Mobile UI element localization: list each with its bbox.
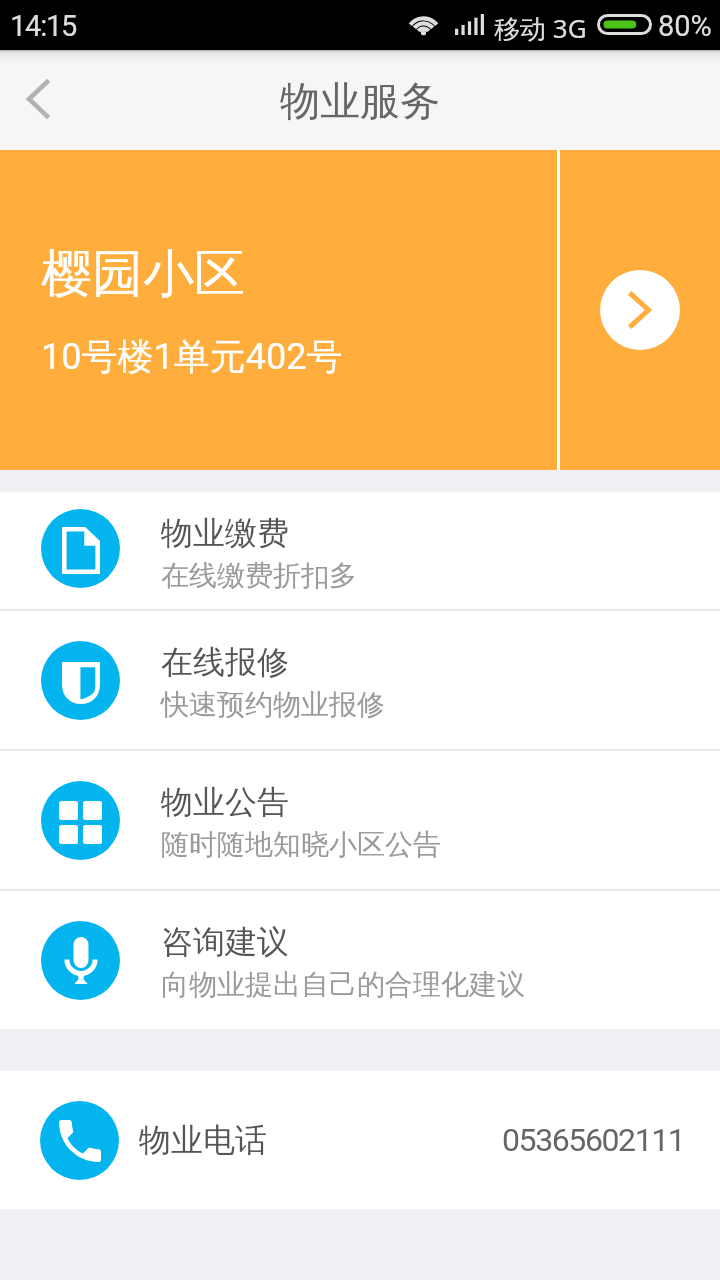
button[interactable]: 物业电话 [0, 1071, 720, 1209]
staticText: 物业服务 [280, 76, 440, 126]
staticText: 咨询建议 [161, 922, 289, 962]
staticText: 物业缴费 [161, 513, 289, 553]
staticText: 樱园小区 [41, 242, 245, 306]
button[interactable]: 樱园小区 [0, 150, 720, 470]
button[interactable]: 在线报修 [0, 611, 720, 749]
staticText: 移动 3G [494, 10, 587, 46]
button[interactable]: 咨询建议 [0, 891, 720, 1029]
staticText: 在线报修 [161, 642, 289, 682]
staticText: 物业电话 [139, 1120, 267, 1160]
staticText: 05365602111 [502, 1121, 685, 1159]
staticText: 随时随地知晓小区公告 [161, 827, 441, 862]
button[interactable]: Back [0, 50, 76, 150]
button[interactable]: 物业公告 [0, 751, 720, 889]
staticText: 快速预约物业报修 [161, 687, 385, 722]
staticText: 物业公告 [161, 782, 289, 822]
staticText: 14:15 [10, 9, 77, 43]
staticText: 80% [658, 9, 712, 43]
staticText: 10号楼1单元402号 [41, 334, 343, 379]
staticText: 在线缴费折扣多 [161, 558, 357, 593]
staticText: 向物业提出自己的合理化建议 [161, 967, 525, 1002]
button[interactable]: 物业缴费 [0, 492, 720, 609]
button[interactable]: Next [600, 270, 680, 350]
